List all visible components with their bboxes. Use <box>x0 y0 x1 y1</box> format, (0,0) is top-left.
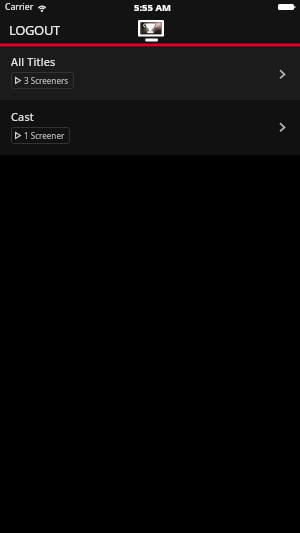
other: Open <box>279 122 286 133</box>
staticText: Cast <box>11 109 34 124</box>
button[interactable]: Cast <box>0 100 300 155</box>
staticText: 3 Screeners <box>24 75 69 86</box>
staticText: 5:55 AM <box>134 1 171 14</box>
staticText: Carrier <box>5 1 34 13</box>
button[interactable]: All Titles <box>0 48 300 100</box>
button[interactable]: Home <box>138 20 164 42</box>
staticText: 1 Screener <box>24 130 65 141</box>
other: Open <box>279 69 286 80</box>
button[interactable]: LOGOUT <box>0 18 70 40</box>
staticText: All Titles <box>11 54 56 69</box>
staticText: LOGOUT <box>9 21 60 37</box>
